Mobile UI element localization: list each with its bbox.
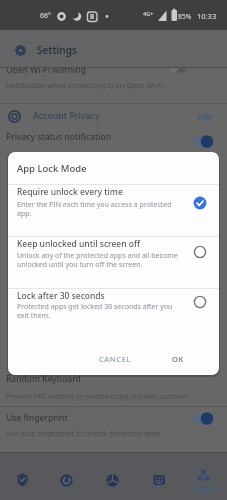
staticText: Require unlock every time [17, 186, 123, 198]
staticText: Privacy status notification [6, 131, 111, 143]
staticText: Prevent PIN reading by randomizing numbe… [6, 391, 189, 401]
staticText: Settings [37, 43, 77, 57]
staticText: exit them. [17, 311, 50, 320]
button[interactable] [0, 128, 227, 152]
button[interactable] [0, 407, 227, 452]
staticText: 10:33 [197, 11, 217, 21]
staticText: Use your fingerprint to unlock protected… [6, 428, 163, 438]
staticText: 4G+ [143, 10, 154, 17]
staticText: Account Privacy [33, 110, 100, 122]
staticText: Use fingerprint [6, 412, 68, 424]
button[interactable] [0, 453, 46, 500]
staticText: Enter the PIN each time you access a pro… [17, 200, 172, 209]
staticText: Notification when connecting to an Open … [6, 80, 165, 90]
button[interactable] [8, 289, 219, 331]
button[interactable] [90, 453, 136, 500]
staticText: Protected apps get locked 30 seconds aft… [17, 302, 173, 311]
staticText: Info [197, 111, 214, 122]
staticText: Unlock any of the protected apps and all… [17, 251, 178, 260]
staticText: Settings [190, 484, 218, 494]
button[interactable] [0, 104, 227, 128]
staticText: App Lock Mode [17, 162, 87, 175]
button[interactable] [180, 453, 226, 500]
button[interactable] [135, 453, 181, 500]
staticText: app. [17, 209, 32, 218]
staticText: Keep unlocked until screen off [17, 238, 141, 250]
staticText: 68° [40, 11, 52, 21]
staticText: OK [172, 354, 184, 364]
button[interactable]: CANCEL [92, 348, 138, 369]
staticText: 85% [178, 12, 192, 21]
staticText: unlocked until you turn off the screen. [17, 260, 143, 269]
staticText: Open Wi-Fi warning [6, 64, 86, 76]
button[interactable]: OK [163, 348, 193, 369]
button[interactable] [8, 237, 219, 288]
staticText: CANCEL [99, 354, 132, 364]
button[interactable] [8, 185, 219, 236]
button[interactable] [45, 453, 91, 500]
staticText: Lock after 30 seconds [17, 290, 105, 302]
staticText: Random Keyboard [6, 373, 81, 385]
staticText: B [90, 12, 95, 21]
